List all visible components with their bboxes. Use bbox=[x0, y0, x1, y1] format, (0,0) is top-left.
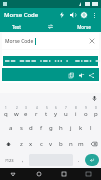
button[interactable]: Play sound bbox=[76, 70, 86, 80]
button[interactable]: Copy bbox=[66, 70, 76, 80]
staticText: z bbox=[20, 140, 23, 148]
button[interactable]: ?123 bbox=[1, 154, 18, 166]
staticText: Morse Code bbox=[5, 38, 34, 45]
staticText: , bbox=[22, 157, 24, 164]
staticText: e bbox=[24, 110, 28, 118]
button[interactable]: 2 bbox=[11, 104, 21, 120]
button[interactable]: k bbox=[76, 120, 86, 136]
button[interactable]: x bbox=[26, 136, 36, 152]
button[interactable]: Flashlight bbox=[56, 9, 67, 20]
staticText: m bbox=[78, 140, 84, 148]
staticText: h bbox=[59, 124, 63, 132]
staticText: . bbox=[78, 157, 80, 164]
button[interactable]: c bbox=[36, 136, 46, 152]
button[interactable]: h bbox=[56, 120, 66, 136]
staticText: d bbox=[29, 124, 33, 132]
staticText: v bbox=[49, 140, 53, 148]
button[interactable]: Sound bbox=[67, 9, 78, 20]
staticText: y bbox=[54, 110, 58, 118]
staticText: 7 bbox=[65, 106, 67, 110]
staticText: x bbox=[29, 140, 33, 148]
button[interactable]: 7 bbox=[61, 104, 71, 120]
button[interactable]: n bbox=[66, 136, 76, 152]
staticText: f bbox=[40, 124, 43, 132]
staticText: 6 bbox=[55, 106, 57, 110]
staticText: q bbox=[4, 110, 8, 118]
button[interactable]: Text bbox=[0, 21, 33, 32]
button[interactable]: f bbox=[36, 120, 46, 136]
button[interactable]: g bbox=[46, 120, 56, 136]
staticText: r bbox=[35, 110, 38, 118]
staticText: Morse bbox=[77, 24, 91, 30]
staticText: a bbox=[9, 124, 13, 132]
staticText: 3 bbox=[25, 106, 27, 110]
button[interactable]: Settings bbox=[78, 9, 89, 20]
button[interactable]: 3 bbox=[21, 104, 31, 120]
staticText: Morse Code bbox=[4, 11, 39, 19]
button[interactable]: Voice input bbox=[90, 94, 99, 103]
button[interactable]: v bbox=[46, 136, 56, 152]
button[interactable]: Shift bbox=[0, 136, 16, 152]
button[interactable]: Share bbox=[86, 70, 96, 80]
staticText: w bbox=[14, 110, 19, 118]
staticText: u bbox=[64, 110, 68, 118]
staticText: 4 bbox=[36, 106, 38, 110]
button[interactable]: 5 bbox=[41, 104, 51, 120]
staticText: o bbox=[84, 110, 88, 118]
button[interactable]: Recents bbox=[51, 168, 76, 180]
button[interactable]: d bbox=[26, 120, 36, 136]
button[interactable]: a bbox=[6, 120, 16, 136]
staticText: 1 bbox=[5, 106, 7, 110]
button[interactable]: Swap bbox=[33, 21, 67, 32]
button[interactable]: Enter bbox=[85, 154, 99, 166]
button[interactable]: Backspace bbox=[86, 136, 101, 152]
staticText: 5 bbox=[46, 106, 48, 110]
staticText: Text bbox=[12, 24, 21, 30]
button[interactable]: Morse bbox=[67, 21, 101, 32]
button[interactable]: Keyboard bbox=[76, 168, 101, 180]
button[interactable]: Back bbox=[0, 168, 26, 180]
staticText: 0 bbox=[95, 106, 97, 110]
button[interactable]: 6 bbox=[51, 104, 61, 120]
staticText: t bbox=[45, 110, 48, 118]
button[interactable]: Clear bbox=[88, 37, 96, 45]
staticText: i bbox=[75, 110, 77, 118]
button[interactable]: m bbox=[76, 136, 86, 152]
button[interactable]: , bbox=[18, 154, 28, 166]
staticText: b bbox=[59, 140, 63, 148]
button[interactable]: Home bbox=[26, 168, 51, 180]
button[interactable]: . bbox=[74, 154, 84, 166]
button[interactable]: 4 bbox=[31, 104, 41, 120]
button[interactable]: 8 bbox=[71, 104, 81, 120]
staticText: 8 bbox=[75, 106, 77, 110]
button[interactable]: b bbox=[56, 136, 66, 152]
staticText: ?123 bbox=[5, 158, 14, 163]
button[interactable]: z bbox=[16, 136, 26, 152]
staticText: j bbox=[70, 124, 72, 132]
staticText: l bbox=[90, 124, 92, 132]
button[interactable]: Morse Code bbox=[2, 33, 99, 49]
staticText: p bbox=[94, 110, 98, 118]
button[interactable]: s bbox=[16, 120, 26, 136]
staticText: n bbox=[69, 140, 73, 148]
staticText: g bbox=[49, 124, 53, 132]
button[interactable]: More options bbox=[89, 10, 99, 20]
button[interactable]: j bbox=[66, 120, 76, 136]
staticText: 2 bbox=[16, 106, 18, 110]
staticText: s bbox=[20, 124, 23, 132]
staticText: c bbox=[40, 140, 43, 148]
button[interactable]: l bbox=[86, 120, 96, 136]
staticText: 9 bbox=[85, 106, 87, 110]
button[interactable] bbox=[3, 56, 98, 66]
staticText: k bbox=[79, 124, 83, 132]
button[interactable]: 1 bbox=[0, 104, 11, 120]
button[interactable]: 9 bbox=[81, 104, 91, 120]
button[interactable]: 0 bbox=[91, 104, 101, 120]
